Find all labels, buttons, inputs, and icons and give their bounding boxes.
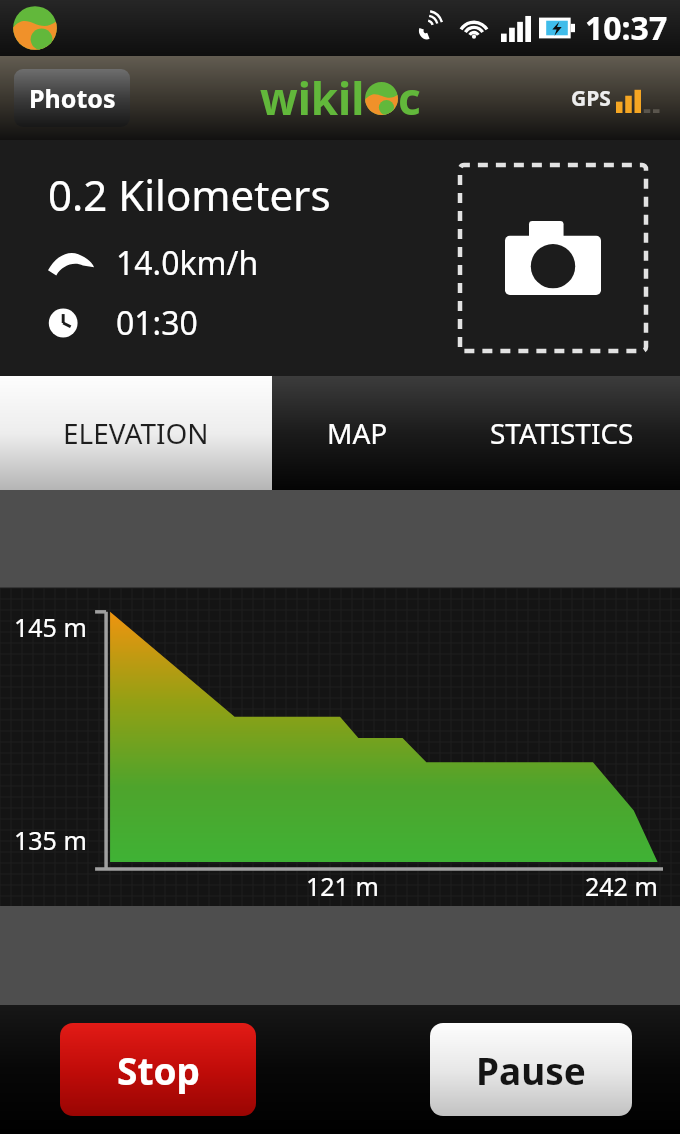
staticText: Stop xyxy=(117,1045,200,1095)
staticText: ELEVATION xyxy=(63,414,209,452)
staticText: wikil xyxy=(260,68,365,128)
button[interactable]: MAP xyxy=(272,376,443,490)
button[interactable]: ELEVATION xyxy=(0,376,272,490)
staticText: 01:30 xyxy=(116,301,198,345)
staticText: Photos xyxy=(29,81,116,115)
staticText: 145 m xyxy=(14,610,87,644)
staticText: 135 m xyxy=(14,823,87,857)
staticText: 121 m xyxy=(306,869,379,903)
staticText: MAP xyxy=(327,414,388,452)
button[interactable]: Pause xyxy=(430,1023,632,1116)
button[interactable]: Take photo xyxy=(460,165,646,351)
button[interactable]: GPS signal xyxy=(571,84,666,113)
button[interactable]: Stop xyxy=(60,1023,256,1116)
staticText: STATISTICS xyxy=(490,414,634,452)
staticText: Pause xyxy=(476,1045,586,1095)
staticText: GPS xyxy=(571,84,611,113)
staticText: 14.0km/h xyxy=(116,241,259,285)
staticText: 242 m xyxy=(585,869,658,903)
button[interactable]: STATISTICS xyxy=(443,376,680,490)
staticText: 0.2 Kilometers xyxy=(48,166,331,223)
button[interactable]: Photos xyxy=(14,69,130,127)
staticText: c xyxy=(398,68,421,128)
staticText: 10:37 xyxy=(585,6,668,50)
